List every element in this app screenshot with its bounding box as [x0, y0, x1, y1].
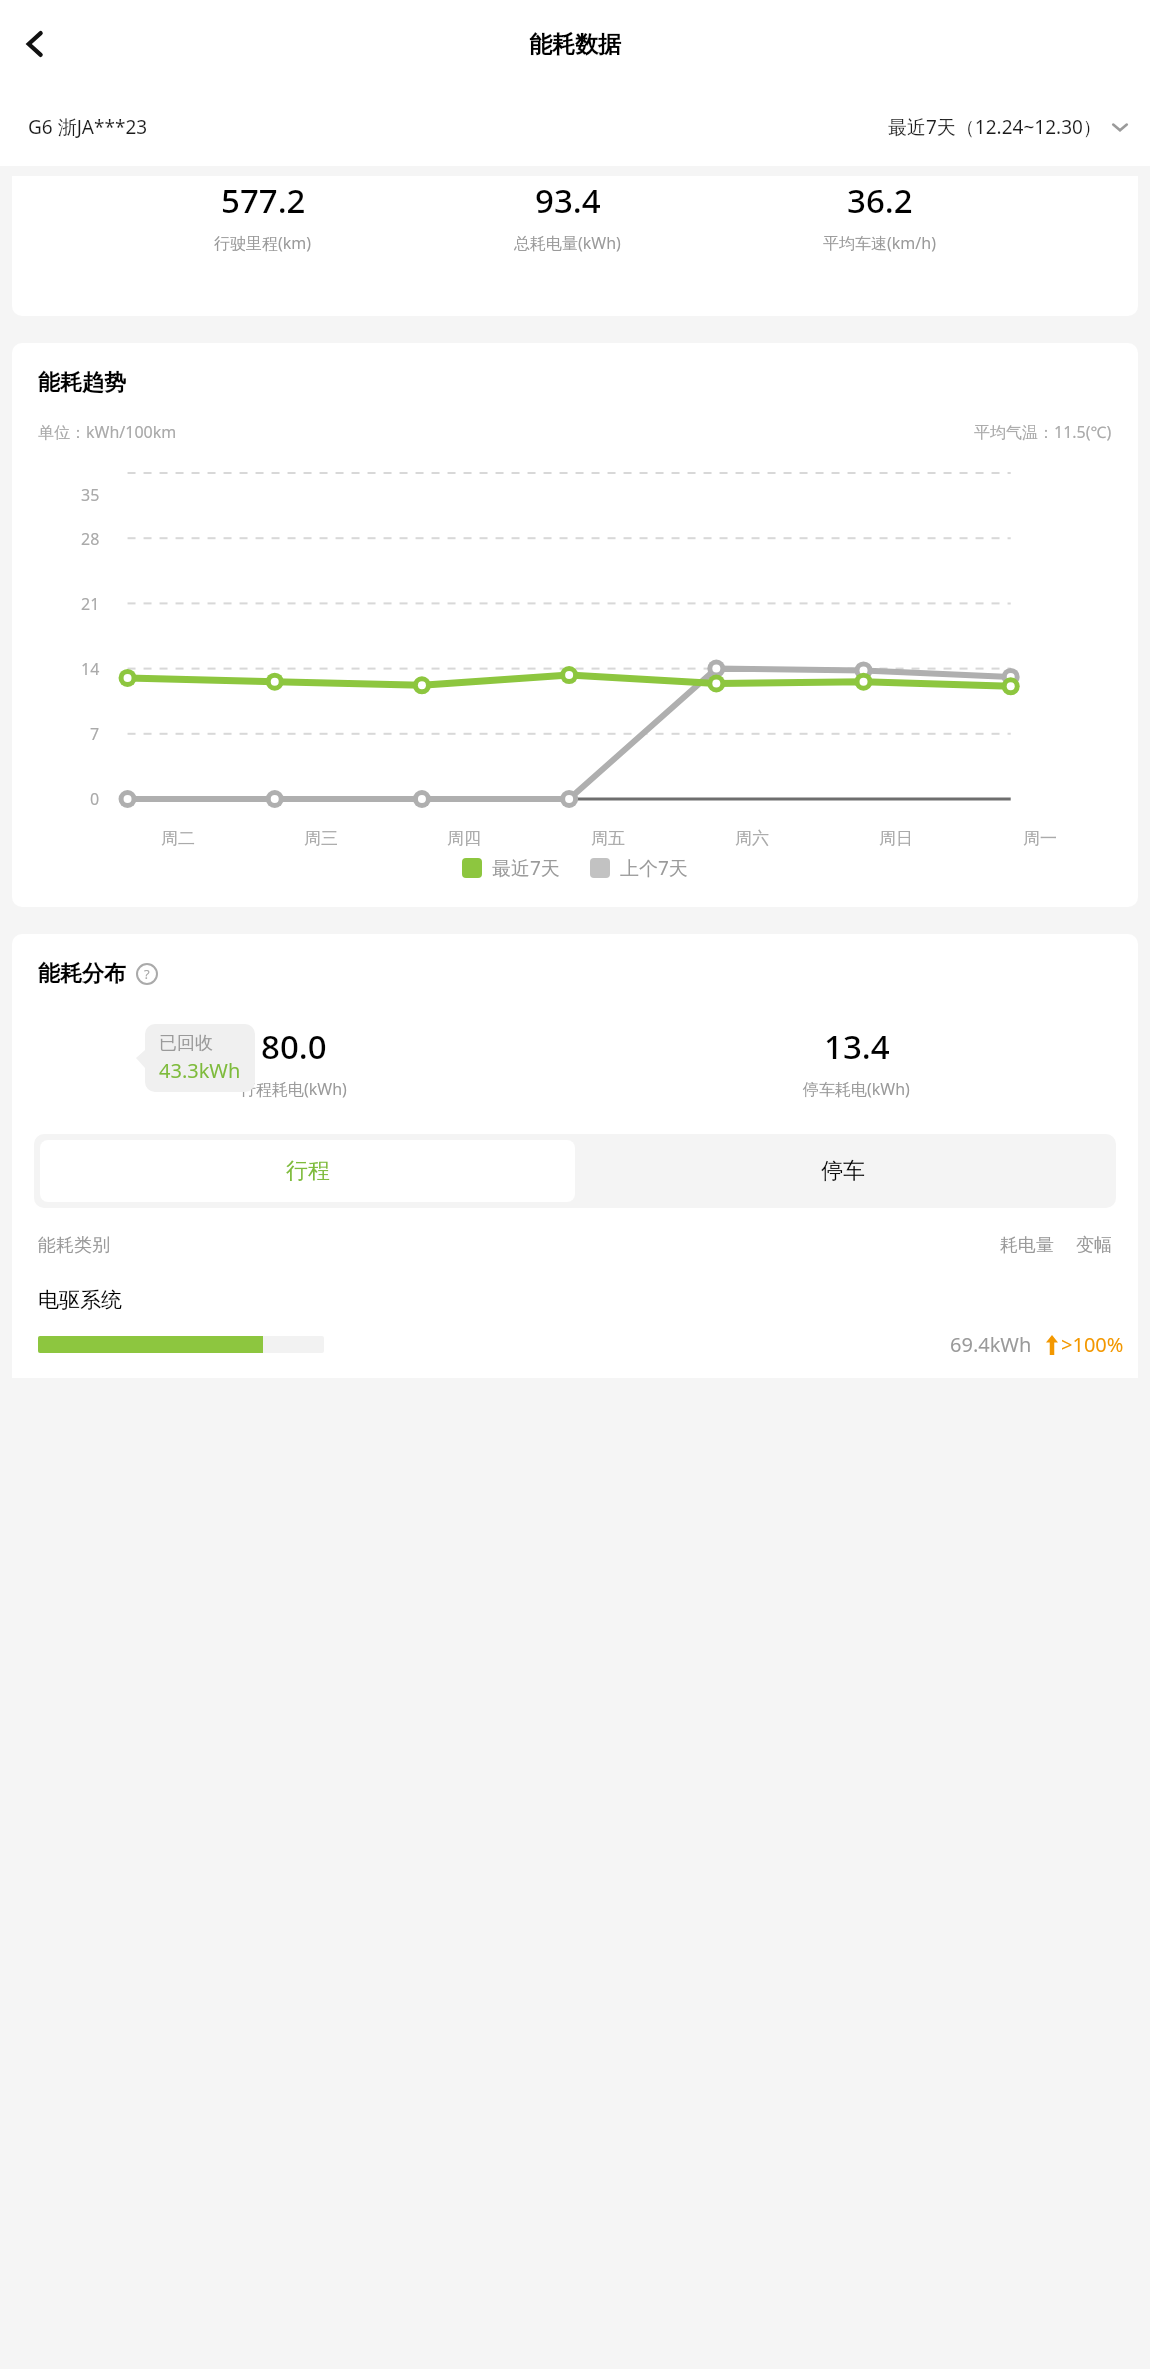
staticText: 13.4	[824, 1024, 890, 1069]
staticText: 变幅	[1076, 1234, 1112, 1257]
staticText: 周四	[447, 828, 481, 849]
staticText: 已回收	[159, 1032, 213, 1055]
staticText: 最近7天	[492, 855, 560, 881]
staticText: 36.2	[847, 178, 913, 223]
staticText: 周日	[879, 828, 913, 849]
staticText: 周一	[1023, 828, 1057, 849]
staticText: 电驱系统	[38, 1287, 122, 1313]
staticText: 周五	[591, 828, 625, 849]
staticText: 周二	[161, 828, 195, 849]
staticText: 能耗趋势	[38, 369, 126, 397]
button[interactable]: G6 浙JA***23	[28, 114, 148, 140]
staticText: ?	[144, 965, 150, 983]
button[interactable]: 停车	[575, 1140, 1110, 1202]
staticText: 能耗数据	[529, 30, 621, 59]
staticText: 最近7天（12.24~12.30）	[888, 114, 1102, 140]
staticText: 0	[90, 788, 100, 810]
staticText: 能耗类别	[38, 1234, 110, 1257]
staticText: 上个7天	[620, 855, 688, 881]
staticText: 69.4kWh	[950, 1331, 1032, 1358]
staticText: 93.4	[535, 178, 601, 223]
staticText: 单位：kWh/100km	[38, 421, 177, 443]
staticText: 平均车速(km/h)	[823, 232, 936, 254]
staticText: 577.2	[221, 178, 306, 223]
staticText: 行驶里程(km)	[214, 232, 312, 254]
button[interactable]: 行程	[40, 1140, 575, 1202]
staticText: 21	[81, 593, 100, 615]
staticText: 行程耗电(kWh)	[240, 1078, 347, 1100]
button[interactable]: Back	[8, 16, 64, 72]
staticText: 总耗电量(kWh)	[514, 232, 621, 254]
button[interactable]: Help	[136, 963, 158, 985]
staticText: 行程	[286, 1157, 330, 1185]
staticText: 周六	[735, 828, 769, 849]
button[interactable]: 最近7天（12.24~12.30）	[888, 114, 1130, 140]
staticText: 43.3kWh	[159, 1057, 241, 1084]
staticText: 停车耗电(kWh)	[803, 1078, 910, 1100]
staticText: 28	[81, 528, 100, 550]
staticText: 80.0	[261, 1024, 327, 1069]
staticText: 35	[81, 484, 100, 506]
staticText: 7	[90, 723, 100, 745]
staticText: 14	[81, 658, 100, 680]
staticText: 周三	[304, 828, 338, 849]
staticText: 平均气温：11.5(℃)	[974, 421, 1112, 443]
staticText: >100%	[1061, 1331, 1124, 1358]
staticText: 能耗分布	[38, 960, 126, 988]
staticText: 耗电量	[1000, 1234, 1054, 1257]
staticText: 停车	[821, 1157, 865, 1185]
